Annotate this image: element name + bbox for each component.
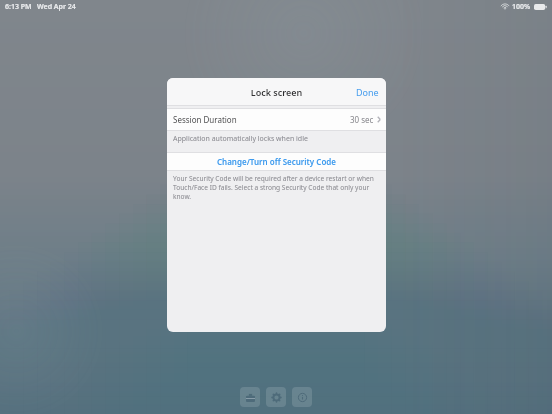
button[interactable]: Settings (266, 387, 286, 407)
staticText: 100% (512, 2, 531, 12)
staticText: Wed Apr 24 (37, 2, 76, 12)
button[interactable]: Done (349, 81, 386, 103)
button[interactable]: Change/Turn off Security Code (167, 153, 386, 170)
button[interactable]: Info (292, 387, 312, 407)
staticText: Done (356, 86, 379, 98)
staticText: Change/Turn off Security Code (167, 156, 386, 167)
staticText: 30 sec (350, 114, 374, 125)
staticText: 6:13 PM (5, 2, 32, 12)
staticText: Application automatically locks when idl… (173, 134, 308, 144)
staticText: Session Duration (173, 114, 237, 125)
staticText: Lock screen (167, 86, 386, 98)
staticText: Your Security Code will be required afte… (173, 174, 381, 201)
button[interactable]: Session Duration (167, 109, 386, 130)
button[interactable]: Files (240, 387, 260, 407)
